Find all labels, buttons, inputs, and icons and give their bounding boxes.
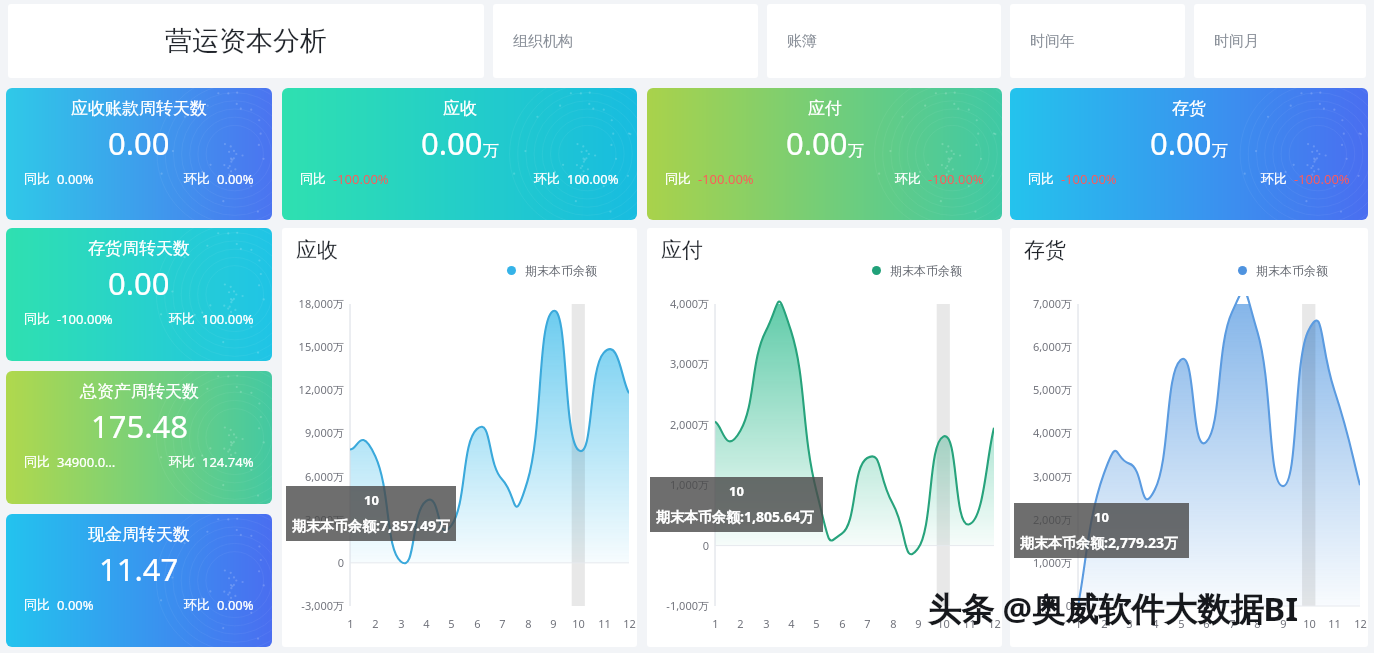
staticText: 1,000万 xyxy=(669,477,709,492)
staticText: 万 xyxy=(1212,141,1228,161)
staticText: 0.00 xyxy=(421,122,483,164)
staticText: 9 xyxy=(915,616,922,631)
staticText: 3 xyxy=(763,616,770,631)
staticText: 0 xyxy=(702,538,709,553)
staticText: 100.00% xyxy=(567,170,619,188)
staticText: 同比 xyxy=(665,170,691,186)
staticText: -100.00% xyxy=(1061,170,1117,188)
staticText: 12 xyxy=(623,616,636,631)
staticText: 124.74% xyxy=(202,453,254,471)
staticText: 7 xyxy=(864,616,871,631)
button[interactable]: 时间月 xyxy=(1194,4,1366,78)
button[interactable]: 组织机构 xyxy=(493,4,758,78)
staticText: 18,000万 xyxy=(298,296,344,311)
staticText: 期末本币余额:7,857.49万 xyxy=(292,516,450,535)
staticText: -100.00% xyxy=(57,310,113,328)
staticText: 1 xyxy=(1075,616,1082,631)
staticText: 0 xyxy=(337,555,344,570)
staticText: 9 xyxy=(550,616,557,631)
staticText: 10 xyxy=(729,482,744,500)
staticText: 同比 xyxy=(1028,170,1054,186)
button[interactable]: 存货 xyxy=(1010,228,1368,647)
staticText: 3,000万 xyxy=(1032,469,1072,484)
staticText: 现金周转天数 xyxy=(88,524,190,545)
staticText: 时间年 xyxy=(1030,32,1075,51)
staticText: 4,000万 xyxy=(669,296,709,311)
button[interactable]: 应收 xyxy=(282,88,637,220)
staticText: 2,000万 xyxy=(1032,512,1072,527)
staticText: 期末本币余额 xyxy=(890,263,962,278)
staticText: 存货 xyxy=(1172,98,1206,119)
staticText: 0 xyxy=(1065,598,1072,613)
staticText: 12 xyxy=(1354,616,1367,631)
staticText: 同比 xyxy=(24,453,50,469)
staticText: 环比 xyxy=(534,170,560,186)
staticText: 5 xyxy=(1178,616,1185,631)
button[interactable]: 应付 xyxy=(647,88,1002,220)
staticText: 5 xyxy=(448,616,455,631)
staticText: 1 xyxy=(347,616,354,631)
staticText: 2 xyxy=(737,616,744,631)
staticText: 6,000万 xyxy=(1032,339,1072,354)
staticText: 6,000万 xyxy=(304,469,344,484)
staticText: 8 xyxy=(525,616,532,631)
staticText: 0.00% xyxy=(217,170,254,188)
staticText: 10 xyxy=(1094,508,1109,526)
staticText: 环比 xyxy=(1261,170,1287,186)
button[interactable]: 应收 xyxy=(282,228,637,647)
button[interactable]: 时间年 xyxy=(1010,4,1185,78)
staticText: 6 xyxy=(474,616,481,631)
staticText: 存货 xyxy=(1024,237,1066,263)
button[interactable]: 账簿 xyxy=(767,4,1001,78)
staticText: 0.00 xyxy=(1150,122,1212,164)
staticText: 10 xyxy=(364,491,379,509)
button[interactable]: 存货 xyxy=(1010,88,1368,220)
staticText: 9,000万 xyxy=(304,425,344,440)
staticText: 0.00 xyxy=(108,122,170,164)
staticText: 10 xyxy=(1303,616,1316,631)
staticText: 应付 xyxy=(808,98,842,119)
staticText: 总资产周转天数 xyxy=(80,381,199,402)
staticText: 11 xyxy=(963,616,976,631)
staticText: 同比 xyxy=(300,170,326,186)
staticText: 12,000万 xyxy=(298,382,344,397)
staticText: 11 xyxy=(1328,616,1341,631)
staticText: 环比 xyxy=(184,596,210,612)
staticText: 0.00 xyxy=(108,262,170,304)
staticText: 11 xyxy=(598,616,611,631)
staticText: 期末本币余额 xyxy=(1256,263,1328,278)
staticText: 同比 xyxy=(24,310,50,326)
staticText: 10 xyxy=(572,616,585,631)
staticText: 9 xyxy=(1280,616,1287,631)
staticText: 10 xyxy=(937,616,950,631)
staticText: 应付 xyxy=(661,237,703,263)
staticText: 存货周转天数 xyxy=(88,238,190,259)
staticText: 7 xyxy=(1229,616,1236,631)
button[interactable]: 营运资本分析 xyxy=(8,4,484,78)
button[interactable]: 存货周转天数 xyxy=(6,228,272,361)
staticText: 万 xyxy=(848,141,864,161)
staticText: 账簿 xyxy=(787,32,817,51)
staticText: 4,000万 xyxy=(1032,425,1072,440)
staticText: 同比 xyxy=(24,596,50,612)
button[interactable]: 现金周转天数 xyxy=(6,514,272,647)
staticText: -100.00% xyxy=(698,170,754,188)
staticText: 环比 xyxy=(169,310,195,326)
staticText: 7 xyxy=(499,616,506,631)
staticText: 头条 @奥威软件大数据BI xyxy=(928,586,1298,631)
staticText: 应收 xyxy=(296,237,338,263)
staticText: 0.00 xyxy=(786,122,848,164)
staticText: 34900.0… xyxy=(57,453,116,471)
staticText: -100.00% xyxy=(333,170,389,188)
button[interactable]: 应收账款周转天数 xyxy=(6,88,272,220)
staticText: 4 xyxy=(1152,616,1159,631)
staticText: 环比 xyxy=(895,170,921,186)
staticText: -3,000万 xyxy=(301,598,344,613)
button[interactable]: 总资产周转天数 xyxy=(6,371,272,504)
button[interactable]: 应付 xyxy=(647,228,1002,647)
staticText: 11.47 xyxy=(99,548,179,590)
staticText: 0.00% xyxy=(217,596,254,614)
staticText: 同比 xyxy=(24,170,50,186)
staticText: 8 xyxy=(890,616,897,631)
staticText: 3,000万 xyxy=(669,356,709,371)
